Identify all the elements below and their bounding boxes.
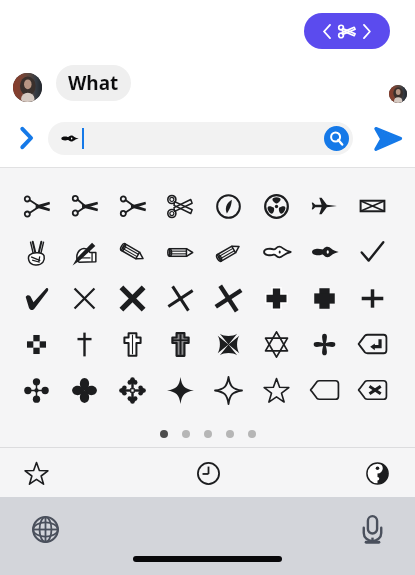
button[interactable]: sc3	[108, 183, 156, 229]
button[interactable]: Cut snippet	[304, 13, 390, 49]
button[interactable]: Expand	[12, 124, 40, 152]
button[interactable]: arrows	[108, 367, 156, 413]
button[interactable]: peace	[12, 229, 60, 275]
button[interactable]: checkBold	[12, 275, 60, 321]
button[interactable]: Recent	[186, 451, 230, 495]
button[interactable]: xThin	[60, 275, 108, 321]
button[interactable]: star6	[252, 321, 300, 367]
staticText: What	[68, 70, 119, 96]
button[interactable]: clubCross	[300, 321, 348, 367]
button[interactable]: enter	[348, 321, 396, 367]
button[interactable]: latinBold	[156, 321, 204, 367]
button[interactable]: maltese	[204, 321, 252, 367]
button[interactable]: clubFill	[60, 367, 108, 413]
button[interactable]: Favorites	[14, 451, 58, 495]
button[interactable]: nibOutline	[252, 229, 300, 275]
button[interactable]: Microphone	[354, 511, 390, 547]
button[interactable]: latinOut	[108, 321, 156, 367]
button[interactable]: quill	[204, 183, 252, 229]
button[interactable]: sc4	[156, 183, 204, 229]
button[interactable]: pencil1	[108, 229, 156, 275]
button[interactable]: plusBold	[300, 275, 348, 321]
button[interactable]: Symbols	[355, 451, 399, 495]
button[interactable]: xItalic2	[204, 275, 252, 321]
button[interactable]: plusOutline	[252, 275, 300, 321]
button[interactable]: Search	[324, 126, 349, 151]
button[interactable]: envelope	[348, 183, 396, 229]
button[interactable]: star4Fill	[156, 367, 204, 413]
button[interactable]: writing	[60, 229, 108, 275]
button[interactable]: plusThin	[348, 275, 396, 321]
button[interactable]: nibFill	[300, 229, 348, 275]
button[interactable]: delKey	[348, 367, 396, 413]
button[interactable]: xBold	[108, 275, 156, 321]
button[interactable]: sc2	[60, 183, 108, 229]
button[interactable]: biohazard	[252, 183, 300, 229]
button[interactable]: xItalic	[156, 275, 204, 321]
button[interactable]: star5	[252, 367, 300, 413]
button[interactable]: checkThin	[348, 229, 396, 275]
button[interactable]: sc1	[12, 183, 60, 229]
button[interactable]: Language	[27, 511, 63, 547]
button[interactable]: Search	[48, 122, 353, 155]
button[interactable]: What	[56, 65, 131, 101]
button[interactable]: lozenge	[12, 321, 60, 367]
button[interactable]: star4Out	[204, 367, 252, 413]
button[interactable]: clubThin	[12, 367, 60, 413]
button[interactable]: latinThin	[60, 321, 108, 367]
button[interactable]: pencil3	[204, 229, 252, 275]
button[interactable]: Send	[372, 124, 402, 154]
button[interactable]: blankKey	[300, 367, 348, 413]
button[interactable]: plane	[300, 183, 348, 229]
button[interactable]: pencil2	[156, 229, 204, 275]
